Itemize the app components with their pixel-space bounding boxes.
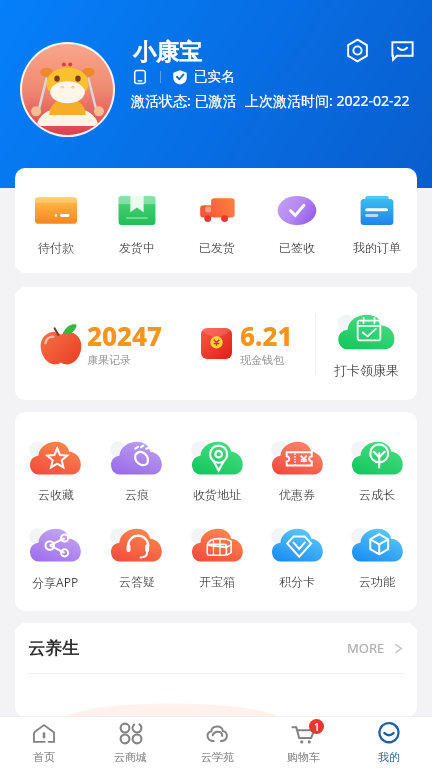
button[interactable]: 云成长 (337, 437, 417, 524)
staticText: 已签收 (279, 240, 315, 255)
staticText: 待付款 (38, 240, 74, 255)
button[interactable]: 云功能 (337, 524, 417, 611)
staticText: 云养生 (28, 638, 79, 659)
staticText: 6.21 (240, 318, 293, 353)
button[interactable]: 收货地址 (177, 437, 257, 524)
button[interactable]: 优惠券 (257, 437, 337, 524)
staticText: 激活状态: 已激活 (131, 91, 237, 110)
staticText: 我的 (378, 750, 400, 764)
staticText: 购物车 (287, 750, 320, 764)
button[interactable]: 待付款 (15, 168, 96, 273)
staticText: 云成长 (359, 487, 395, 502)
button[interactable]: 积分卡 (257, 524, 337, 611)
button[interactable]: 云学苑 (174, 716, 260, 768)
button[interactable]: 我的订单 (337, 168, 417, 273)
button[interactable]: 1 (260, 716, 346, 768)
button[interactable]: 已签收 (257, 168, 337, 273)
staticText: 分享APP (32, 574, 79, 590)
button[interactable]: Messages (388, 36, 416, 64)
staticText: 首页 (33, 750, 55, 764)
staticText: 打卡领康果 (334, 362, 399, 378)
staticText: 已发货 (199, 240, 235, 255)
button[interactable]: Settings (343, 36, 371, 64)
button[interactable]: 首页 (0, 716, 87, 768)
button[interactable]: 已发货 (177, 168, 257, 273)
button[interactable]: 6.21 (174, 287, 315, 400)
button[interactable]: 打卡领康果 (316, 287, 417, 400)
staticText: 我的订单 (353, 240, 401, 255)
staticText: 云商城 (114, 750, 147, 764)
staticText: 20247 (87, 318, 163, 353)
staticText: 开宝箱 (199, 574, 235, 589)
button[interactable]: 开宝箱 (177, 524, 257, 611)
staticText: 1 (314, 720, 320, 734)
staticText: 优惠券 (279, 487, 315, 502)
button[interactable]: 云商城 (87, 716, 174, 768)
button[interactable]: 20247 (15, 287, 174, 400)
staticText: 云学苑 (201, 750, 234, 764)
button[interactable]: 云收藏 (15, 437, 96, 524)
button[interactable]: 分享APP (15, 524, 96, 611)
button[interactable]: 我的 (346, 716, 432, 768)
staticText: 发货中 (119, 240, 155, 255)
staticText: 康果记录 (87, 353, 131, 367)
button[interactable]: MORE (347, 639, 405, 657)
staticText: 收货地址 (193, 487, 241, 502)
staticText: 上次激活时间: 2022-02-22 (245, 91, 410, 110)
button[interactable]: Avatar (20, 42, 115, 137)
staticText: 已实名 (194, 68, 235, 85)
staticText: 云答疑 (119, 574, 155, 589)
button[interactable]: 发货中 (96, 168, 177, 273)
staticText: 小康宝 (133, 38, 202, 67)
staticText: MORE (347, 639, 385, 657)
staticText: 云功能 (359, 574, 395, 589)
staticText: 现金钱包 (240, 353, 284, 367)
button[interactable]: 云痕 (96, 437, 177, 524)
staticText: 云痕 (125, 487, 149, 502)
staticText: 积分卡 (279, 574, 315, 589)
button[interactable]: 云答疑 (96, 524, 177, 611)
staticText: 云收藏 (38, 487, 74, 502)
